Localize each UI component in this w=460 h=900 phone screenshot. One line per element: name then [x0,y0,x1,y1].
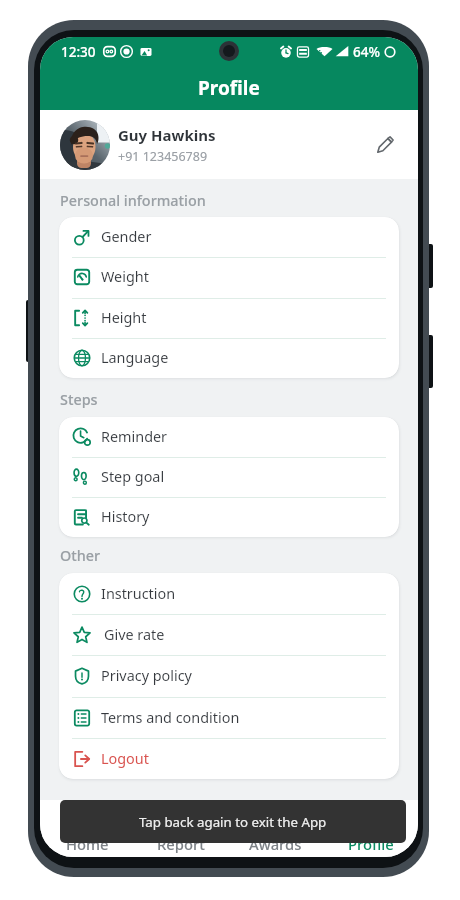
staticText: Logout [101,749,149,769]
button[interactable]: Edit profile [372,132,398,158]
staticText: Terms and condition [101,708,240,728]
staticText: History [101,507,150,527]
staticText: Report [157,834,205,854]
button[interactable]: Step goal [59,457,399,497]
staticText: Profile [348,834,394,854]
button[interactable]: Height [59,298,399,338]
staticText: Step goal [101,467,165,487]
staticText: Give rate [104,625,165,645]
button[interactable]: Home [40,800,134,857]
button[interactable]: Instruction [59,573,399,614]
staticText: Profile [198,75,260,101]
staticText: Reminder [101,427,168,447]
button[interactable]: Reminder [59,417,399,457]
staticText: Guy Hawkins [118,125,216,145]
staticText: Language [101,348,169,368]
staticText: 64% [353,43,380,61]
staticText: Weight [101,267,149,287]
button[interactable]: Weight [59,257,399,297]
button[interactable]: Language [59,338,399,378]
staticText: Gender [101,227,152,247]
staticText: +91 123456789 [118,148,208,165]
button[interactable]: Awards [228,800,323,857]
button[interactable]: Logout [59,738,399,779]
button[interactable]: Profile [323,800,418,857]
button[interactable]: Give rate [59,614,399,655]
button[interactable]: Terms and condition [59,697,399,738]
button[interactable]: Privacy policy [59,655,399,696]
staticText: Steps [60,390,98,410]
button[interactable]: Report [134,800,228,857]
staticText: Tap back again to exit the App [139,813,327,831]
staticText: Privacy policy [101,666,192,686]
staticText: Other [60,546,101,566]
staticText: Personal information [60,191,206,211]
staticText: Awards [249,834,302,854]
staticText: Home [66,834,109,854]
button[interactable]: History [59,497,399,537]
staticText: 12:30 [61,43,96,61]
button[interactable]: Gender [59,217,399,257]
staticText: Height [101,308,147,328]
button[interactable]: Guy Hawkins [40,110,418,179]
staticText: Instruction [101,584,176,604]
